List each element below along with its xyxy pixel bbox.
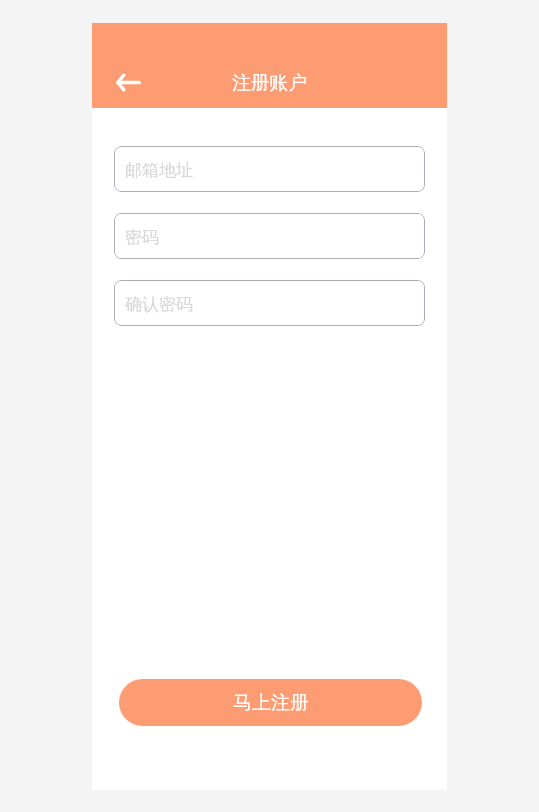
button[interactable]: 密码: [114, 213, 425, 259]
staticText: 密码: [125, 227, 159, 248]
staticText: 注册账户: [232, 71, 308, 95]
button[interactable]: 马上注册: [119, 679, 422, 726]
button[interactable]: 确认密码: [114, 280, 425, 326]
button[interactable]: Back: [104, 58, 152, 106]
button[interactable]: 邮箱地址: [114, 146, 425, 192]
staticText: 邮箱地址: [125, 160, 193, 181]
staticText: 确认密码: [125, 294, 193, 315]
staticText: 马上注册: [233, 691, 309, 715]
